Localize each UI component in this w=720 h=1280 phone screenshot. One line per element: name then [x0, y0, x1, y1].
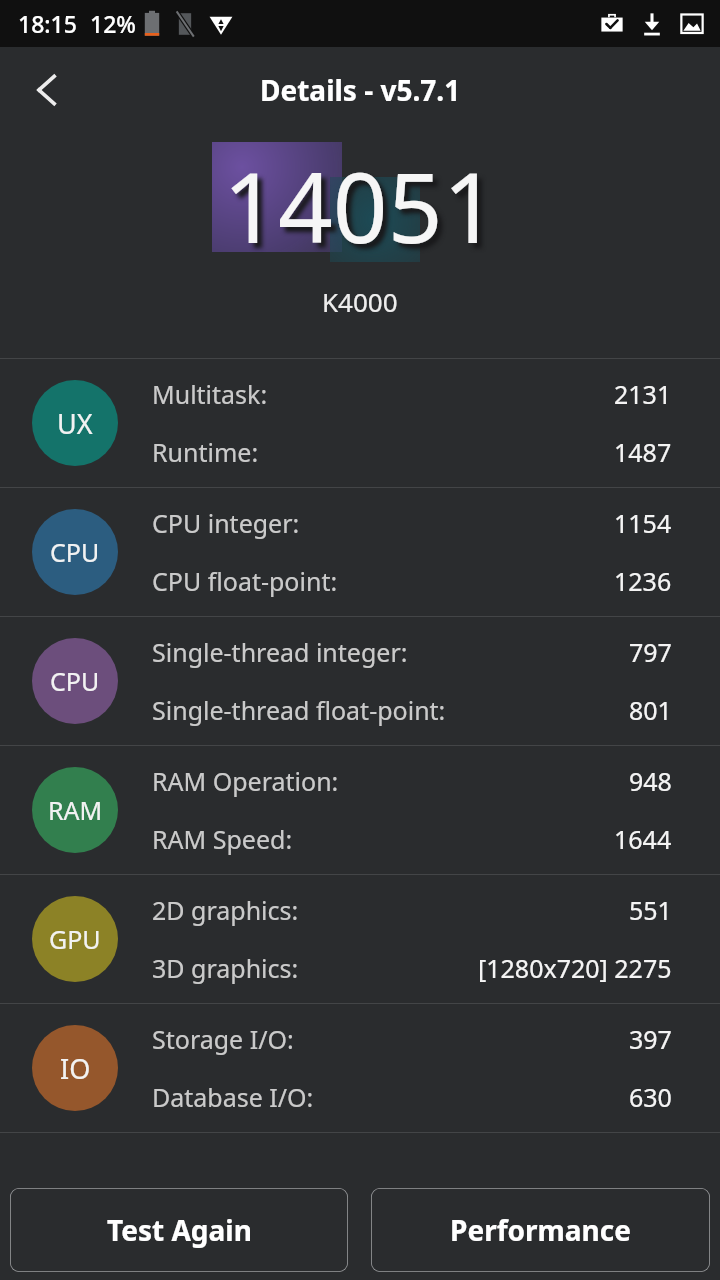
button[interactable]: UX: [0, 359, 720, 487]
staticText: 801: [629, 693, 672, 727]
staticText: 797: [629, 635, 672, 669]
staticText: K4000: [322, 284, 398, 319]
staticText: Details - v5.7.1: [260, 71, 461, 109]
staticText: [1280x720] 2275: [478, 951, 672, 985]
other: Download: [638, 10, 666, 38]
staticText: CPU: [50, 664, 100, 698]
other: Screenshot: [678, 10, 706, 38]
staticText: 630: [629, 1080, 672, 1114]
staticText: 12%: [90, 8, 136, 39]
staticText: 1236: [614, 564, 672, 598]
staticText: Runtime:: [152, 435, 259, 469]
staticText: UX: [57, 405, 93, 442]
staticText: 1487: [614, 435, 672, 469]
button[interactable]: Test Again: [10, 1188, 348, 1272]
button[interactable]: RAM: [0, 746, 720, 874]
staticText: Test Again: [107, 1211, 252, 1249]
button[interactable]: Performance: [371, 1188, 710, 1272]
staticText: RAM: [48, 793, 103, 827]
staticText: CPU integer:: [152, 506, 300, 540]
staticText: CPU float-point:: [152, 564, 338, 598]
staticText: 2D graphics:: [152, 893, 299, 927]
staticText: Database I/O:: [152, 1080, 314, 1114]
staticText: GPU: [49, 922, 101, 956]
staticText: 1644: [614, 822, 672, 856]
button[interactable]: GPU: [0, 875, 720, 1003]
staticText: 3D graphics:: [152, 951, 299, 985]
staticText: 2131: [614, 377, 672, 411]
staticText: RAM Speed:: [152, 822, 293, 856]
staticText: Single-thread integer:: [152, 635, 408, 669]
other: Work profile: [598, 10, 626, 38]
staticText: RAM Operation:: [152, 764, 339, 798]
staticText: Storage I/O:: [152, 1022, 294, 1056]
button[interactable]: Back: [12, 55, 82, 125]
button[interactable]: CPU: [0, 488, 720, 616]
staticText: 948: [629, 764, 672, 798]
staticText: 14051: [223, 140, 498, 271]
staticText: 18:15: [18, 8, 77, 39]
staticText: IO: [60, 1050, 91, 1087]
staticText: 1154: [614, 506, 672, 540]
staticText: Performance: [450, 1211, 631, 1249]
staticText: Multitask:: [152, 377, 268, 411]
staticText: 397: [629, 1022, 672, 1056]
staticText: Single-thread float-point:: [152, 693, 446, 727]
button[interactable]: IO: [0, 1004, 720, 1132]
staticText: 551: [629, 893, 672, 927]
button[interactable]: CPU: [0, 617, 720, 745]
staticText: CPU: [50, 535, 100, 569]
